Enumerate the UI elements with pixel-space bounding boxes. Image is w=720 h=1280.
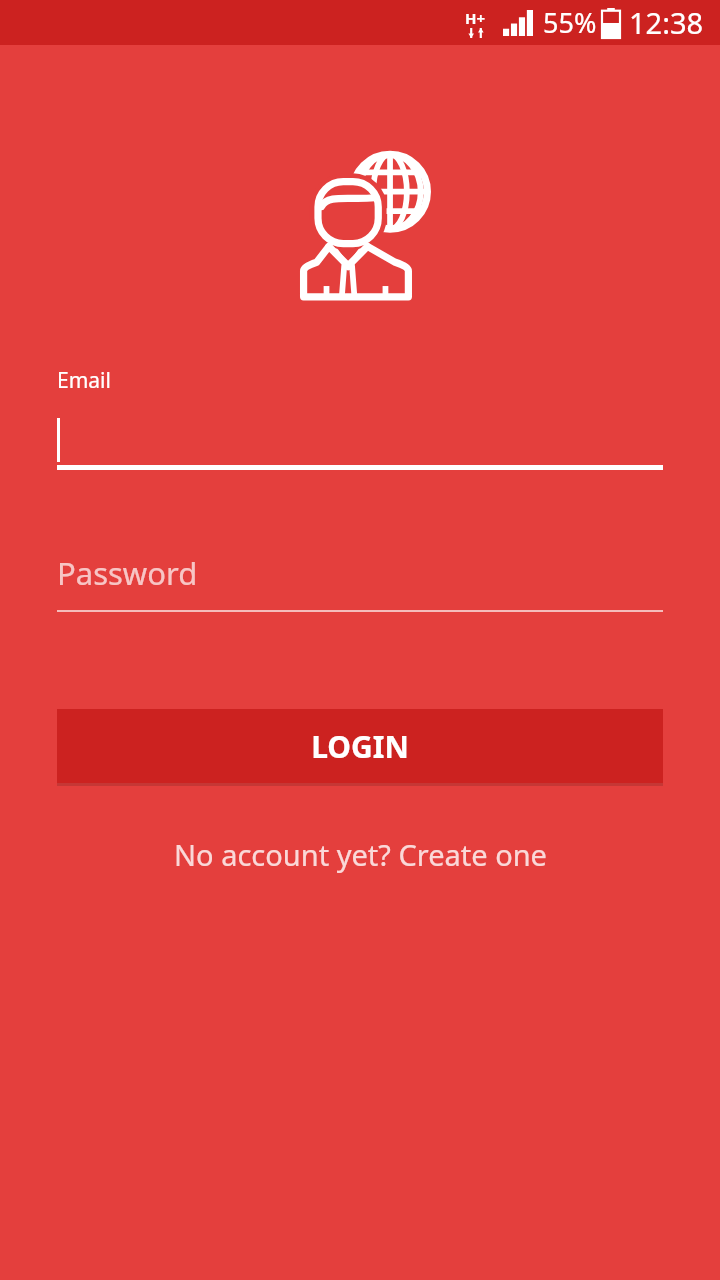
staticText: Email xyxy=(57,366,111,395)
staticText: Password xyxy=(57,552,198,594)
button[interactable]: No account yet? Create one xyxy=(0,835,720,874)
button[interactable]: LOGIN xyxy=(57,709,663,783)
button[interactable]: Password xyxy=(57,552,663,612)
staticText: No account yet? Create one xyxy=(174,835,547,874)
staticText: 12:38 xyxy=(629,3,704,42)
staticText: H+ xyxy=(465,8,486,28)
button[interactable]: Email xyxy=(57,366,663,470)
staticText: LOGIN xyxy=(311,726,409,767)
staticText: 55% xyxy=(543,4,597,41)
